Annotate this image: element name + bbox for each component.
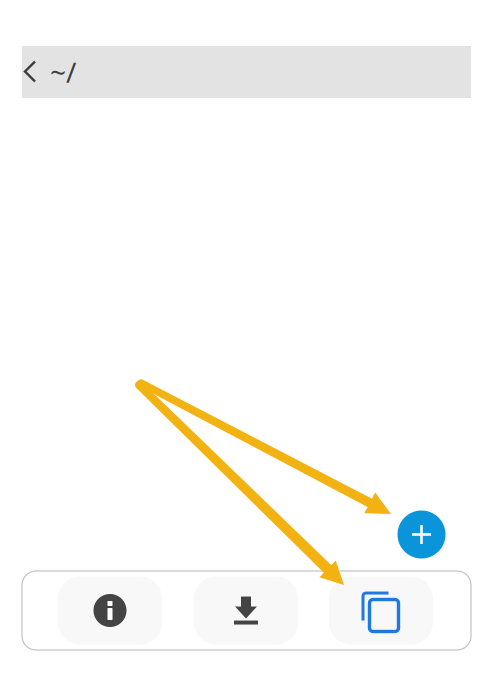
staticText: ~/ xyxy=(50,53,76,91)
button[interactable]: Copy xyxy=(329,576,433,644)
button[interactable]: Info xyxy=(58,576,162,644)
button[interactable]: ~/ xyxy=(22,46,471,98)
button[interactable]: Download xyxy=(194,576,298,644)
button[interactable]: Add xyxy=(397,510,445,558)
